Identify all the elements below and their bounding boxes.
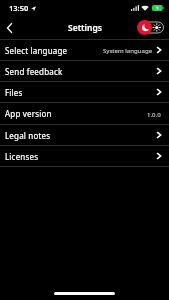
- staticText: 13:50: [9, 3, 29, 13]
- staticText: System language: [103, 46, 153, 54]
- button[interactable]: Back: [0, 19, 18, 37]
- button[interactable]: Legal notes: [0, 125, 169, 145]
- staticText: Send feedback: [5, 66, 63, 77]
- button[interactable]: Toggle dark mode: [137, 20, 164, 35]
- button[interactable]: Select language: [0, 40, 169, 60]
- staticText: 1.0.0: [147, 110, 161, 118]
- staticText: Select language: [5, 45, 68, 56]
- staticText: Legal notes: [5, 130, 51, 141]
- staticText: App version: [5, 108, 52, 119]
- staticText: Settings: [68, 22, 102, 34]
- button[interactable]: Files: [0, 82, 169, 102]
- button[interactable]: Licenses: [0, 146, 169, 166]
- staticText: Licenses: [5, 151, 39, 162]
- staticText: Files: [5, 87, 23, 98]
- button[interactable]: Send feedback: [0, 61, 169, 81]
- button[interactable]: App version: [0, 103, 169, 124]
